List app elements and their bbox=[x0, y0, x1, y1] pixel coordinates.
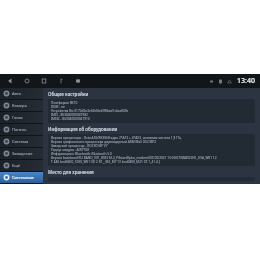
staticText: Авто bbox=[12, 91, 21, 96]
staticText: Заводские bbox=[12, 151, 33, 156]
staticText: Камера bbox=[12, 103, 27, 108]
staticText: Устройства No 0172d5a3e63b5bd3f8bad1cbaa… bbox=[51, 109, 129, 113]
button[interactable]: Системные bbox=[0, 172, 43, 183]
staticText: Версия baseband RU BAND_V01_8925 M-2_P8s… bbox=[51, 156, 252, 160]
button[interactable]: Recent apps bbox=[40, 77, 48, 85]
staticText: Версия процессора - Octa A55/RK3568 ядро… bbox=[51, 136, 182, 140]
staticText: Общие настройки bbox=[48, 91, 89, 97]
button[interactable]: Платформа RK10 bbox=[48, 99, 255, 123]
staticText: Панель bbox=[12, 127, 27, 132]
staticText: Радиус модуля - AIR7708 bbox=[51, 148, 89, 152]
staticText: ROM - не bbox=[51, 105, 65, 109]
button[interactable]: Панель bbox=[0, 124, 43, 135]
button[interactable]: Ещё bbox=[0, 160, 43, 171]
button[interactable]: Screenshot bbox=[74, 77, 82, 85]
staticText: Информация об оборудовании bbox=[48, 126, 118, 132]
button[interactable]: Авто bbox=[0, 88, 43, 99]
staticText: Заводской процессор - ROCKCHIP V7 bbox=[51, 144, 108, 148]
button[interactable]: Volume bbox=[57, 77, 65, 85]
button[interactable]: Версия процессора - Octa A55/RK3568 ядро… bbox=[48, 134, 255, 166]
staticText: T-EAE bnd0400_1000_W01 (O) 2 R1_, M2_M7 … bbox=[51, 160, 160, 164]
staticText: 13:40 bbox=[237, 76, 255, 86]
button[interactable]: Back bbox=[6, 77, 14, 85]
staticText: Системные bbox=[12, 175, 34, 180]
staticText: Система bbox=[12, 139, 29, 144]
staticText: Ещё bbox=[12, 163, 21, 168]
staticText: Голос bbox=[12, 115, 23, 120]
button[interactable]: Home bbox=[23, 77, 31, 85]
button[interactable]: Заводские bbox=[0, 148, 43, 159]
staticText: IMEI2 - 863040000047910 bbox=[51, 117, 90, 121]
button[interactable]: Голос bbox=[0, 112, 43, 123]
staticText: Информация о Bluetooth: Bluetooth 5.0 bbox=[51, 152, 112, 156]
staticText: Версия графического процессора двухъядер… bbox=[51, 140, 157, 144]
button[interactable]: Система bbox=[0, 136, 43, 147]
staticText: Место для хранения bbox=[48, 169, 94, 175]
staticText: Платформа RK10 bbox=[51, 101, 78, 105]
staticText: IMEI - 863040000047982 bbox=[51, 113, 88, 117]
button[interactable]: Камера bbox=[0, 100, 43, 111]
